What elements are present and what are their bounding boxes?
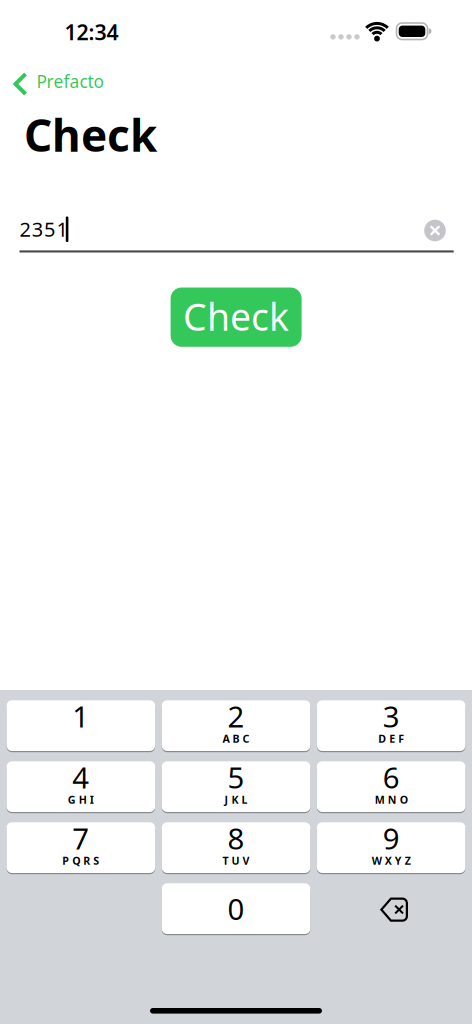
button[interactable]: 4 [6, 761, 155, 812]
button[interactable]: 7 [6, 822, 155, 873]
staticText: J K L [224, 793, 247, 807]
button[interactable]: 1 [6, 700, 155, 751]
staticText: Prefacto [36, 70, 103, 93]
staticText: 3 [383, 697, 400, 736]
button[interactable]: 3 [317, 700, 465, 751]
staticText: 4 [72, 758, 89, 797]
button[interactable]: 9 [317, 822, 465, 873]
staticText: Check [183, 291, 289, 341]
staticText: 1 [72, 697, 89, 736]
button[interactable]: 2 [162, 700, 310, 751]
staticText: 2 [227, 697, 244, 736]
button[interactable]: Check [171, 287, 302, 347]
button[interactable]: 0 [162, 883, 310, 934]
staticText: Check [24, 105, 157, 164]
button[interactable]: 5 [162, 761, 310, 812]
staticText: 9 [383, 819, 400, 858]
button[interactable]: Clear text [424, 220, 446, 241]
staticText: P Q R S [62, 854, 99, 868]
staticText: G H I [68, 793, 94, 807]
button[interactable]: Number to check [0, 206, 472, 254]
staticText: W X Y Z [372, 854, 411, 868]
staticText: 6 [383, 758, 400, 797]
button[interactable]: Delete [317, 883, 465, 934]
button[interactable]: Prefacto [13, 64, 111, 100]
staticText: A B C [222, 732, 249, 746]
staticText: 2351 [19, 216, 67, 242]
button[interactable]: 6 [317, 761, 465, 812]
staticText: M N O [375, 793, 408, 807]
staticText: D E F [378, 732, 404, 746]
staticText: 5 [227, 758, 244, 797]
staticText: T U V [222, 854, 249, 868]
staticText: 12:34 [64, 18, 118, 46]
staticText: 7 [72, 819, 89, 858]
staticText: 0 [227, 889, 244, 928]
staticText: 8 [227, 819, 244, 858]
button[interactable]: 8 [162, 822, 310, 873]
